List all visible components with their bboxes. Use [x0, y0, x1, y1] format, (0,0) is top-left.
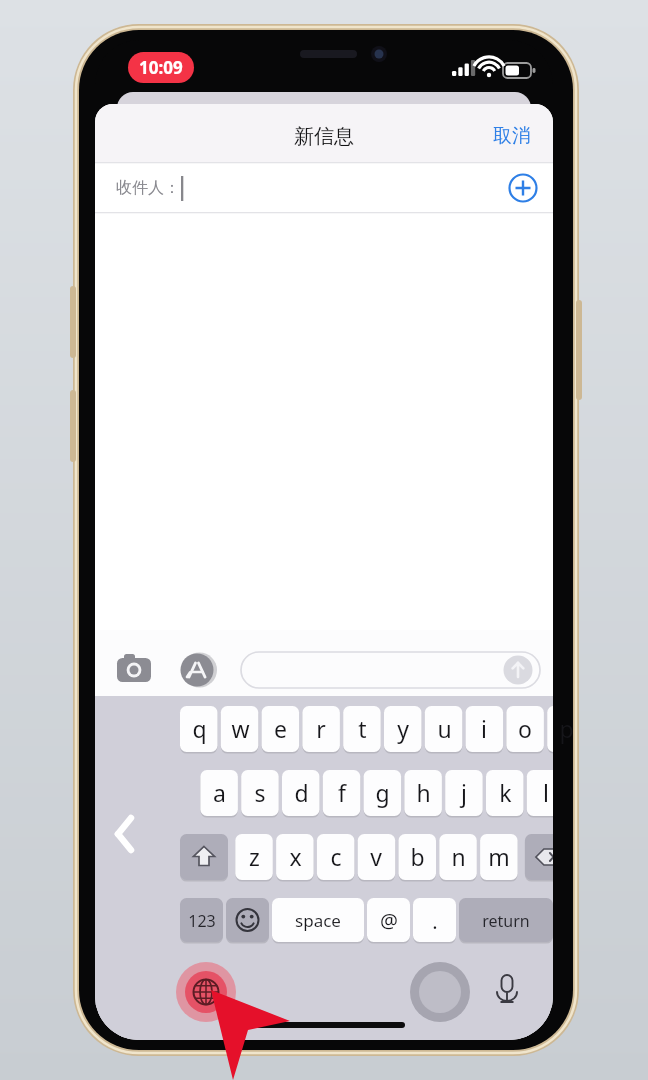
staticText: x — [289, 841, 302, 872]
staticText: f — [338, 777, 346, 808]
button[interactable]: Camera — [108, 642, 164, 698]
staticText: c — [330, 841, 342, 872]
staticText: u — [437, 713, 452, 744]
staticText: 123 — [188, 910, 216, 932]
button[interactable]: Send — [502, 654, 536, 688]
staticText: w — [231, 713, 250, 744]
button[interactable]: Expand keyboard — [104, 806, 154, 864]
button[interactable]: 添加收件人 — [498, 164, 548, 212]
staticText: . — [432, 908, 438, 935]
staticText: 收件人： — [116, 178, 180, 198]
staticText: j — [461, 777, 467, 808]
staticText: 取消 — [493, 124, 531, 148]
staticText: r — [316, 713, 326, 744]
staticText: k — [499, 777, 512, 808]
staticText: s — [254, 777, 266, 808]
button[interactable]: 取消 — [478, 112, 544, 160]
staticText: b — [410, 841, 425, 872]
staticText: m — [488, 841, 510, 872]
button[interactable]: Dictation — [488, 964, 532, 1022]
staticText: n — [451, 841, 466, 872]
staticText: i — [481, 713, 487, 744]
staticText: e — [274, 713, 287, 744]
button[interactable]: Apps — [172, 642, 228, 698]
staticText: t — [358, 713, 367, 744]
staticText: o — [518, 713, 532, 744]
staticText: g — [375, 777, 390, 808]
staticText: p — [559, 713, 574, 744]
button[interactable]: Message — [239, 650, 541, 690]
staticText: @ — [380, 907, 398, 934]
staticText: d — [294, 777, 309, 808]
staticText: return — [482, 910, 530, 932]
staticText: 10:09 — [139, 56, 183, 79]
button[interactable]: Change keyboard — [176, 962, 238, 1024]
staticText: l — [543, 777, 549, 808]
staticText: q — [192, 713, 207, 744]
staticText: y — [397, 713, 409, 744]
staticText: h — [416, 777, 431, 808]
staticText: space — [295, 909, 341, 932]
staticText: 新信息 — [294, 124, 354, 149]
staticText: v — [370, 841, 382, 872]
staticText: a — [213, 777, 226, 808]
staticText: z — [249, 841, 260, 872]
